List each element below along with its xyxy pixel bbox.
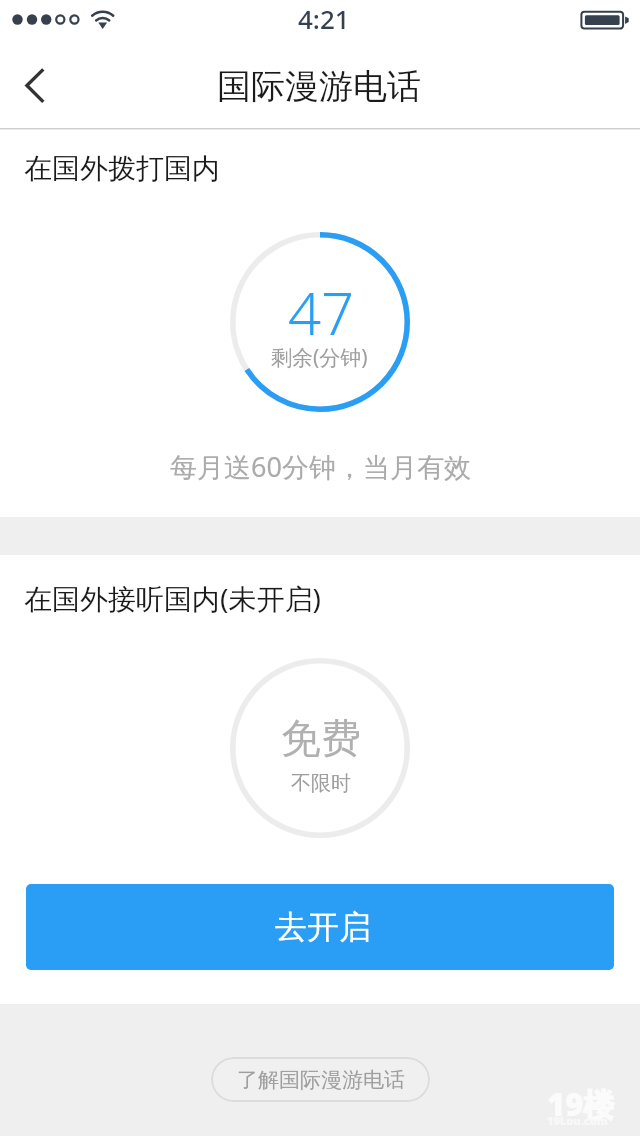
staticText: 19楼 bbox=[547, 1083, 615, 1123]
staticText: 不限时 bbox=[291, 771, 351, 796]
staticText: 在国外拨打国内 bbox=[24, 151, 220, 186]
staticText: 免费 bbox=[281, 713, 361, 763]
button[interactable]: Back bbox=[5, 50, 65, 110]
staticText: 每月送60分钟，当月有效 bbox=[170, 448, 471, 485]
staticText: 去开启 bbox=[275, 907, 371, 947]
staticText: 国际漫游电话 bbox=[217, 65, 421, 108]
staticText: 了解国际漫游电话 bbox=[237, 1067, 405, 1093]
staticText: 47 bbox=[288, 273, 355, 352]
staticText: 在国外接听国内(未开启) bbox=[24, 579, 321, 617]
staticText: 剩余(分钟) bbox=[271, 343, 368, 372]
button[interactable]: 了解国际漫游电话 bbox=[211, 1057, 430, 1102]
staticText: 4:21 bbox=[298, 1, 350, 36]
staticText: 19Lou.com bbox=[547, 1113, 608, 1128]
button[interactable]: 去开启 bbox=[26, 884, 614, 970]
